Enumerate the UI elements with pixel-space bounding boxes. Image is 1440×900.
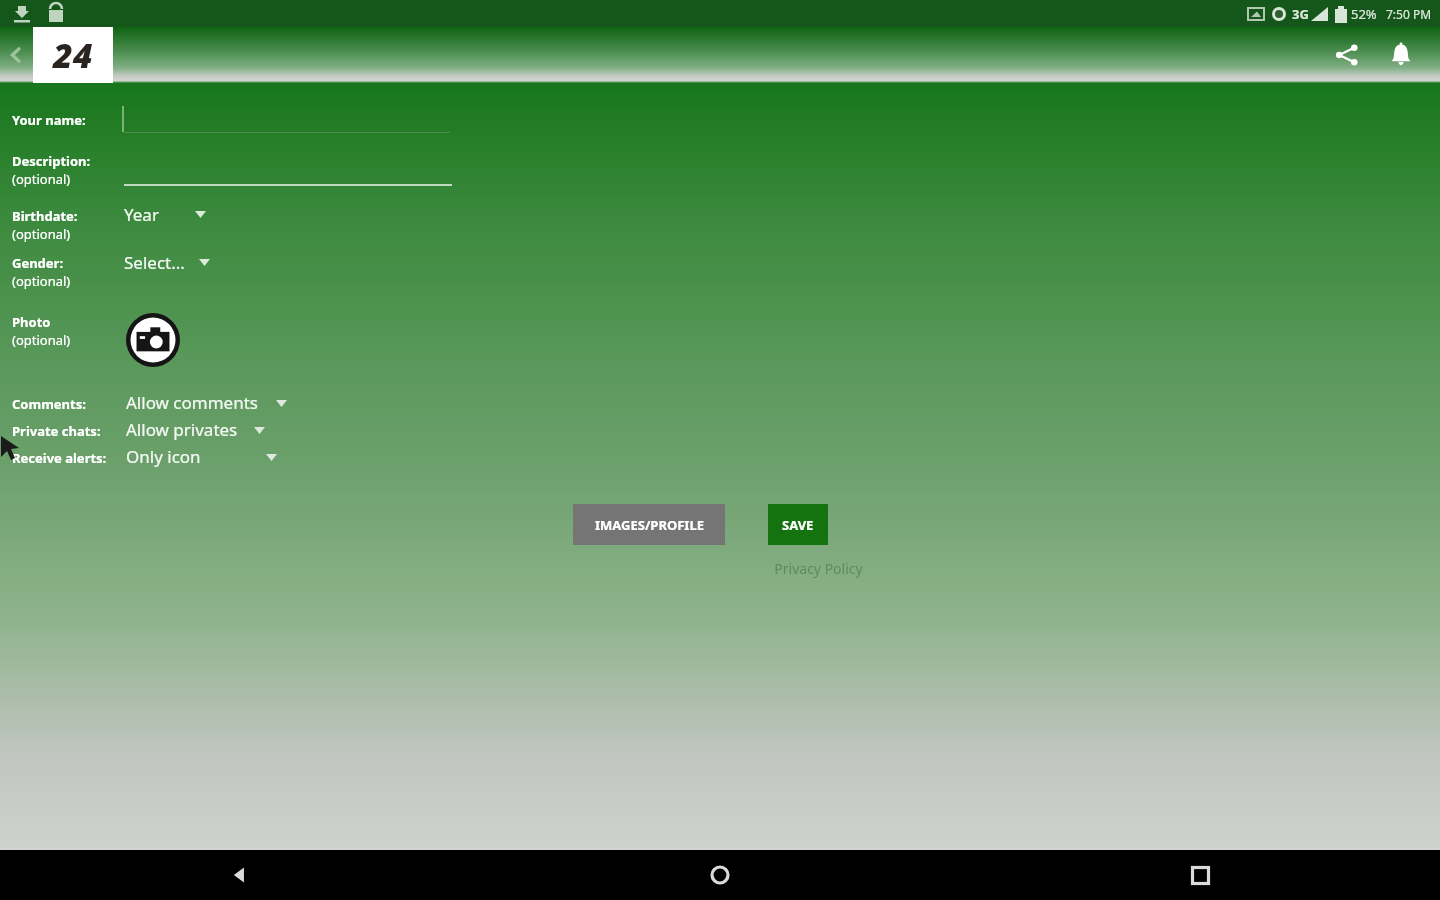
button[interactable]: Home [480,850,960,900]
staticText: (optional) [12,170,71,188]
button[interactable]: Back [0,27,32,83]
staticText: Only icon [126,445,201,468]
button[interactable]: IMAGES/PROFILE [573,504,725,545]
button[interactable]: Only icon [126,445,201,468]
staticText: Year [124,203,159,226]
button[interactable]: Recents [960,850,1440,900]
button[interactable]: Allow privates [126,418,238,441]
staticText: 7:50 PM [1386,6,1432,22]
button[interactable]: Share [1324,32,1370,78]
button[interactable] [276,400,287,407]
staticText: Gender: [12,254,64,272]
staticText: Allow privates [126,418,238,441]
staticText: 24 [53,32,93,78]
button[interactable]: Privacy Policy [760,559,876,578]
staticText: Your name: [12,111,86,129]
button[interactable]: Year [124,203,206,226]
button[interactable]: Notifications [1378,32,1424,78]
staticText: Select... [124,251,185,274]
staticText: (optional) [12,331,71,349]
button[interactable]: Allow comments [126,391,258,414]
staticText: (optional) [12,272,71,290]
button[interactable]: Logo 24 [33,27,113,83]
button[interactable]: Select... [124,251,210,274]
staticText: IMAGES/PROFILE [595,516,704,534]
staticText: Comments: [12,395,86,413]
button[interactable]: SAVE [768,504,828,545]
button[interactable]: Add photo [124,311,181,368]
staticText: Receive alerts: [12,449,107,467]
staticText: 52% [1351,5,1377,23]
staticText: Private chats: [12,422,101,440]
staticText: Birthdate: [12,207,78,225]
button[interactable] [266,454,277,461]
button[interactable]: Back [0,850,480,900]
staticText: Allow comments [126,391,258,414]
staticText: 3G [1292,5,1309,23]
staticText: Description: [12,152,91,170]
staticText: SAVE [782,516,814,534]
staticText: Photo [12,313,51,331]
button[interactable] [254,427,265,434]
staticText: Privacy Policy [774,559,863,578]
staticText: (optional) [12,225,71,243]
